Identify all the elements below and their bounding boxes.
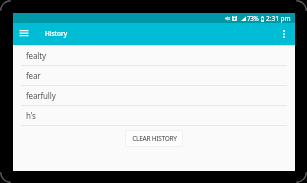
button[interactable]: fearfully [13,86,295,106]
staticText: History [45,29,68,38]
staticText: CLEAR HISTORY [132,134,177,143]
button[interactable]: fealty [13,46,295,66]
button[interactable]: CLEAR HISTORY [125,130,183,147]
staticText: h's [26,110,36,121]
staticText: 73% [247,14,259,23]
staticText: fear [26,70,41,81]
button[interactable]: h's [13,106,295,126]
staticText: fealty [26,50,46,61]
button[interactable]: Open navigation drawer [15,25,33,43]
staticText: 2:31 pm [266,14,291,23]
button[interactable]: fear [13,66,295,86]
staticText: fearfully [26,90,56,101]
button[interactable]: More options [275,25,293,43]
